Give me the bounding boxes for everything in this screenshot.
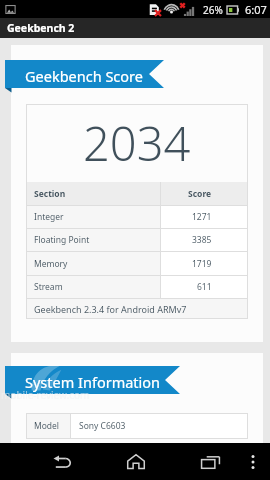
button[interactable]: More options: [235, 443, 270, 480]
staticText: Score: [188, 188, 212, 200]
staticText: System Information: [25, 372, 161, 392]
button[interactable]: Back: [37, 443, 85, 480]
staticText: Floating Point: [34, 234, 90, 246]
staticText: Sony C6603: [79, 420, 126, 432]
staticText: Geekbench 2: [7, 21, 75, 35]
button[interactable]: Geekbench 2: [0, 18, 270, 38]
staticText: 1271: [192, 211, 212, 223]
staticText: 1719: [192, 258, 212, 270]
staticText: 2034: [83, 111, 191, 175]
staticText: Section: [34, 188, 66, 200]
button[interactable]: Home: [112, 443, 160, 480]
staticText: 6:07: [245, 2, 267, 17]
staticText: Model: [34, 420, 60, 432]
staticText: 26%: [203, 3, 223, 17]
staticText: Integer: [34, 211, 64, 223]
staticText: Memory: [34, 258, 68, 270]
staticText: Stream: [34, 281, 63, 293]
staticText: 3385: [192, 234, 212, 246]
staticText: Geekbench Score: [25, 66, 143, 86]
staticText: Geekbench 2.3.4 for Android ARMv7: [34, 303, 187, 315]
staticText: 611: [197, 281, 212, 293]
staticText: mobile-review.com: [1, 388, 90, 402]
button[interactable]: System Information: [5, 366, 180, 400]
button[interactable]: Geekbench Score: [5, 60, 164, 94]
button[interactable]: Recent apps: [186, 443, 234, 480]
